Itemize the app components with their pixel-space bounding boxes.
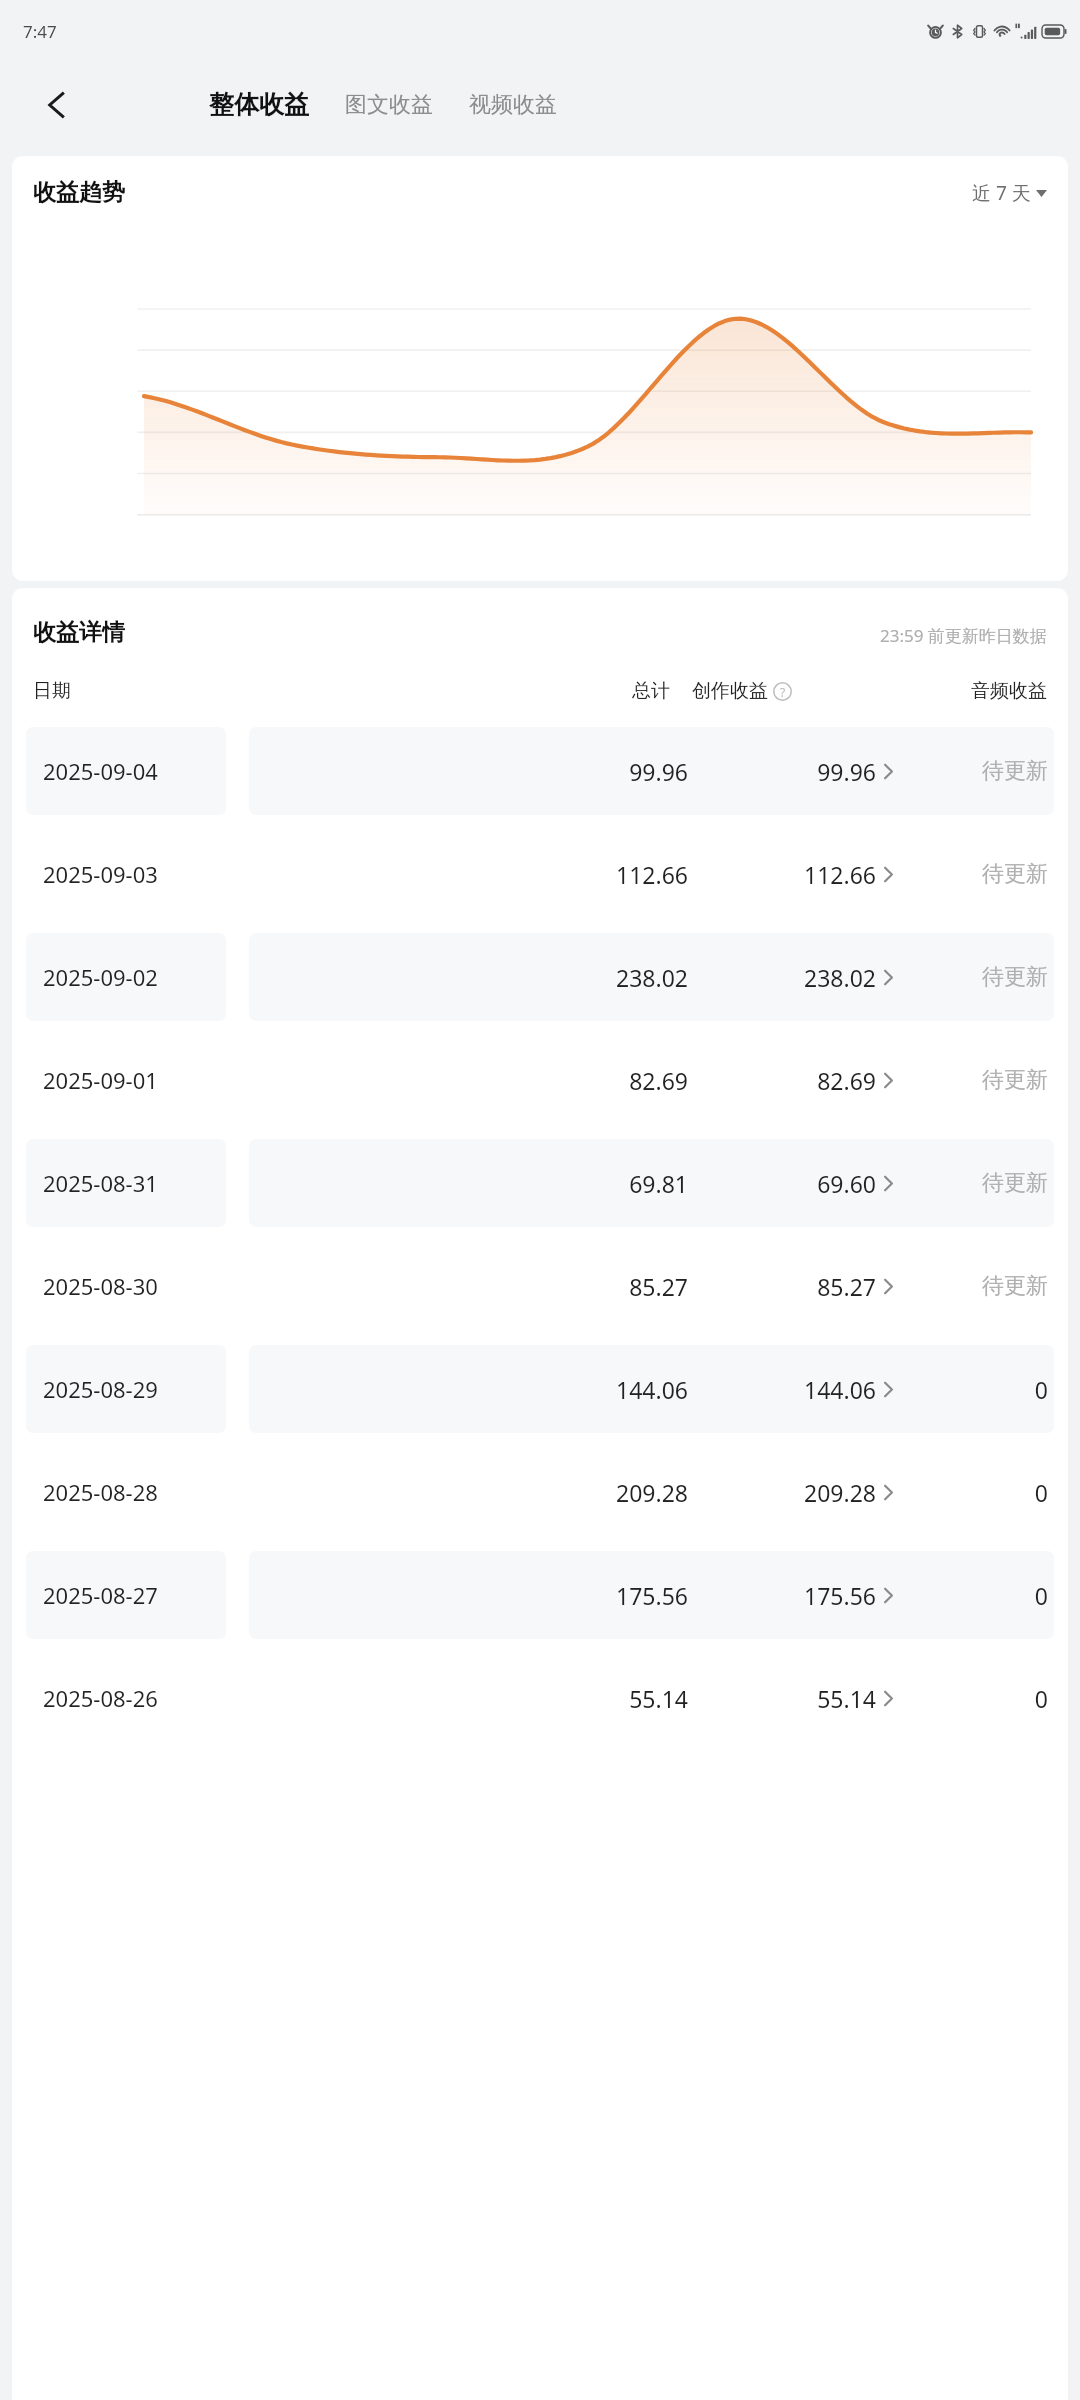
staticText: 待更新 xyxy=(893,860,1048,888)
staticText: 112.66 xyxy=(249,859,688,890)
button[interactable]: 2025-08-29 xyxy=(12,1337,1068,1440)
button[interactable]: 近 7 天 xyxy=(972,180,1047,206)
staticText: 238.02 xyxy=(249,962,688,993)
button[interactable]: Back xyxy=(28,76,86,134)
staticText: 0 xyxy=(893,1374,1048,1405)
staticText: 69.60 xyxy=(718,1168,876,1199)
staticText: 99.96 xyxy=(718,756,876,787)
staticText: 144.06 xyxy=(718,1374,876,1405)
staticText: 99.96 xyxy=(249,756,688,787)
staticText: 收益趋势 xyxy=(33,178,125,207)
button[interactable]: 2025-08-28 xyxy=(12,1440,1068,1543)
button[interactable]: 2025-08-26 xyxy=(12,1646,1068,1749)
staticText: 待更新 xyxy=(893,1066,1048,1094)
button[interactable]: 2025-08-30 xyxy=(12,1234,1068,1337)
staticText: 近 7 天 xyxy=(972,180,1031,206)
button[interactable]: 视频收益 xyxy=(465,83,561,127)
button[interactable]: 2025-09-01 xyxy=(12,1028,1068,1131)
staticText: 2025-08-31 xyxy=(43,1168,158,1198)
staticText: 209.28 xyxy=(718,1477,876,1508)
staticText: 音频收益 xyxy=(882,679,1047,703)
staticText: 0 xyxy=(893,1683,1048,1714)
staticText: ? xyxy=(780,684,786,700)
staticText: 55.14 xyxy=(249,1683,688,1714)
staticText: 82.69 xyxy=(249,1065,688,1096)
staticText: 视频收益 xyxy=(469,91,557,119)
button[interactable]: 整体收益 xyxy=(205,81,313,128)
button[interactable]: 图文收益 xyxy=(341,83,437,127)
staticText: 0 xyxy=(893,1477,1048,1508)
staticText: 创作收益 xyxy=(692,679,768,703)
staticText: 85.27 xyxy=(249,1271,688,1302)
staticText: 待更新 xyxy=(893,1169,1048,1197)
staticText: 2025-09-01 xyxy=(43,1065,158,1095)
staticText: 23:59 前更新昨日数据 xyxy=(880,624,1047,647)
staticText: 85.27 xyxy=(718,1271,876,1302)
staticText: 144.06 xyxy=(249,1374,688,1405)
staticText: 2025-08-28 xyxy=(43,1477,158,1507)
staticText: 收益详情 xyxy=(33,618,125,647)
staticText: 日期 xyxy=(33,679,233,703)
staticText: 整体收益 xyxy=(209,89,309,120)
staticText: 2025-08-29 xyxy=(43,1374,158,1404)
staticText: 总计 xyxy=(233,679,670,703)
staticText: 175.56 xyxy=(249,1580,688,1611)
staticText: 2025-08-27 xyxy=(43,1580,158,1610)
staticText: 175.56 xyxy=(718,1580,876,1611)
staticText: 2025-09-04 xyxy=(43,756,158,786)
staticText: 待更新 xyxy=(893,1272,1048,1300)
button[interactable]: 2025-08-31 xyxy=(12,1131,1068,1234)
staticText: 待更新 xyxy=(893,757,1048,785)
staticText: 2025-09-02 xyxy=(43,962,158,992)
staticText: 55.14 xyxy=(718,1683,876,1714)
staticText: 2025-08-30 xyxy=(43,1271,158,1301)
staticText: 112.66 xyxy=(718,859,876,890)
staticText: 238.02 xyxy=(718,962,876,993)
staticText: 待更新 xyxy=(893,963,1048,991)
staticText: 0 xyxy=(893,1580,1048,1611)
staticText: 2025-08-26 xyxy=(43,1683,158,1713)
button[interactable]: 2025-09-02 xyxy=(12,925,1068,1028)
staticText: 图文收益 xyxy=(345,91,433,119)
button[interactable]: 2025-09-04 xyxy=(12,719,1068,822)
staticText: 82.69 xyxy=(718,1065,876,1096)
staticText: 7:47 xyxy=(23,20,57,43)
staticText: 2025-09-03 xyxy=(43,859,158,889)
staticText: 69.81 xyxy=(249,1168,688,1199)
button[interactable]: 创作收益说明 xyxy=(773,682,792,701)
button[interactable]: 2025-09-03 xyxy=(12,822,1068,925)
button[interactable]: 2025-08-27 xyxy=(12,1543,1068,1646)
staticText: 209.28 xyxy=(249,1477,688,1508)
